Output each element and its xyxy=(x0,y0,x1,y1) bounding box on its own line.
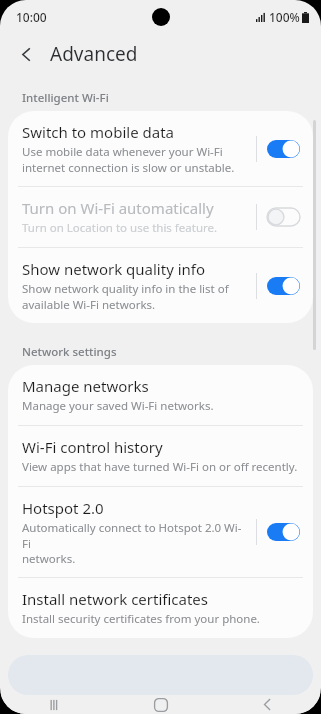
button[interactable]: Back xyxy=(8,36,44,72)
staticText: Network settings xyxy=(22,344,117,360)
staticText: Use mobile data whenever your Wi-Fi inte… xyxy=(22,144,235,175)
staticText: Switch to mobile data xyxy=(22,122,174,142)
staticText: Manage networks xyxy=(22,376,149,396)
button[interactable]: Show network quality info xyxy=(8,248,313,323)
staticText: View apps that have turned Wi-Fi on or o… xyxy=(22,459,298,475)
button[interactable]: Switch to mobile data switch xyxy=(265,135,301,163)
staticText: Turn on Location to use this feature. xyxy=(22,220,218,236)
button[interactable]: Home xyxy=(107,695,214,714)
staticText: Wi-Fi control history xyxy=(22,437,163,457)
staticText: Install security certificates from your … xyxy=(22,611,260,627)
staticText: Manage your saved Wi-Fi networks. xyxy=(22,398,214,414)
staticText: Show network quality info xyxy=(22,259,206,279)
staticText: Install network certificates xyxy=(22,589,208,609)
button[interactable]: Wi-Fi control history xyxy=(8,426,313,486)
button[interactable]: Recents xyxy=(0,695,107,714)
button[interactable]: Manage networks xyxy=(8,365,313,425)
button[interactable]: Back xyxy=(214,695,321,714)
button[interactable]: Hotspot 2.0 xyxy=(8,487,313,577)
staticText: Turn on Wi-Fi automatically xyxy=(22,198,214,218)
staticText: 100% xyxy=(269,9,300,25)
staticText: 10:00 xyxy=(16,9,47,25)
button[interactable]: Hotspot 2.0 switch xyxy=(265,518,301,546)
staticText: Hotspot 2.0 xyxy=(22,498,104,518)
staticText: Automatically connect to Hotspot 2.0 Wi-… xyxy=(22,520,250,566)
staticText: Advanced xyxy=(50,41,138,67)
button[interactable]: Turn on Wi-Fi automatically xyxy=(8,187,313,247)
staticText: Intelligent Wi-Fi xyxy=(22,90,109,106)
staticText: Show network quality info in the list of… xyxy=(22,281,229,312)
button[interactable]: Switch to mobile data xyxy=(8,111,313,186)
button[interactable]: Show network quality info switch xyxy=(265,272,301,300)
button[interactable]: Turn on Wi-Fi automatically switch xyxy=(265,203,301,231)
button[interactable]: Install network certificates xyxy=(8,578,313,638)
